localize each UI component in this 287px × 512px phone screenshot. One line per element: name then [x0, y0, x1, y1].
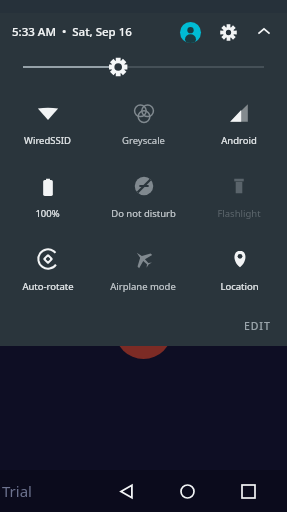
staticText: Trial [2, 481, 32, 501]
button[interactable]: Greyscale [95, 90, 191, 163]
button[interactable]: Settings [215, 19, 241, 45]
button[interactable]: Auto-rotate [0, 236, 95, 309]
button[interactable]: Back [96, 470, 157, 512]
staticText: Airplane mode [110, 280, 176, 293]
button[interactable]: Collapse [251, 19, 277, 45]
staticText: Do not disturb [111, 207, 176, 220]
staticText: Auto-rotate [22, 280, 74, 293]
button[interactable]: Brightness [23, 50, 264, 84]
button[interactable]: User [177, 19, 203, 45]
button[interactable]: Browser [115, 302, 172, 359]
button[interactable]: WiredSSID [0, 90, 95, 163]
staticText: EDIT [244, 319, 271, 333]
button[interactable]: Recents [218, 470, 279, 512]
staticText: Android [221, 134, 257, 147]
button[interactable]: Flashlight [191, 163, 287, 236]
staticText: 5:33 AM • Sat, Sep 16 [12, 24, 132, 40]
button[interactable]: EDIT [228, 313, 287, 339]
button[interactable]: Android [191, 90, 287, 163]
staticText: Flashlight [217, 207, 261, 220]
button[interactable]: Do not disturb [95, 163, 191, 236]
staticText: Location [220, 280, 259, 293]
button[interactable]: Location [191, 236, 287, 309]
button[interactable]: 100% [0, 163, 95, 236]
staticText: Greyscale [122, 134, 165, 147]
staticText: WiredSSID [24, 134, 71, 147]
button[interactable]: Airplane mode [95, 236, 191, 309]
staticText: 100% [35, 207, 60, 220]
button[interactable]: Home [157, 470, 218, 512]
